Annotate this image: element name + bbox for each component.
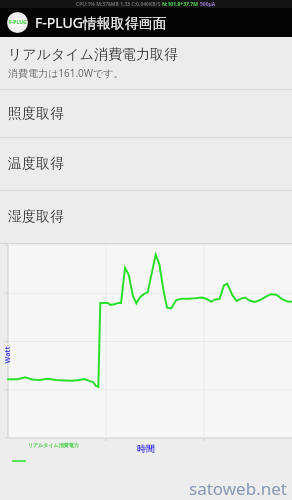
staticText: リアルタイム消費電力 (28, 442, 79, 448)
staticText: 消費電力は161.0Wです。 (8, 66, 124, 80)
staticText: 湿度取得 (8, 208, 64, 226)
staticText: N:101.9+37.7M (162, 1, 200, 8)
staticText: リアルタイム消費電力取得 (8, 46, 178, 64)
staticText: F-PLUG (9, 19, 27, 26)
staticText: F-PLUG情報取得画面 (35, 13, 167, 32)
staticText: CPU:1% M:378MB 1.33 C:0.046KB/S (76, 1, 162, 8)
staticText: Watt (2, 346, 12, 363)
staticText: 500µA (200, 1, 216, 8)
button[interactable]: 湿度取得 (0, 191, 292, 243)
staticText: 温度取得 (8, 155, 64, 173)
staticText: 時間 (137, 443, 155, 454)
button[interactable]: 照度取得 (0, 90, 292, 137)
button[interactable]: リアルタイム消費電力取得 (0, 37, 292, 89)
staticText: 照度取得 (8, 105, 64, 123)
staticText: satoweb.net (189, 477, 287, 500)
button[interactable]: 温度取得 (0, 138, 292, 190)
